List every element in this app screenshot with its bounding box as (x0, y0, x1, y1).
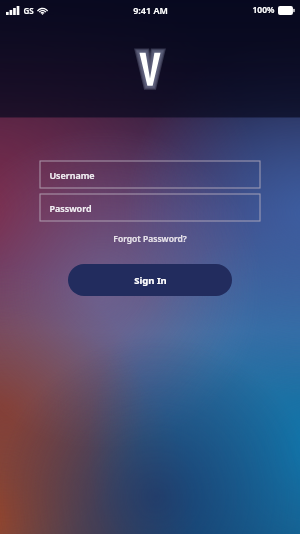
button[interactable]: Password (40, 194, 260, 221)
staticText: Forgot Password? (113, 233, 187, 245)
staticText: Password (49, 202, 92, 214)
staticText: GS (23, 5, 34, 16)
button[interactable]: Sign In (68, 264, 232, 296)
staticText: Sign In (134, 274, 167, 287)
staticText: 100% (252, 4, 275, 16)
staticText: Username (49, 169, 95, 181)
button[interactable]: Username (40, 161, 260, 188)
staticText: 9:41 AM (133, 4, 168, 16)
button[interactable]: Forgot Password? (40, 233, 260, 245)
